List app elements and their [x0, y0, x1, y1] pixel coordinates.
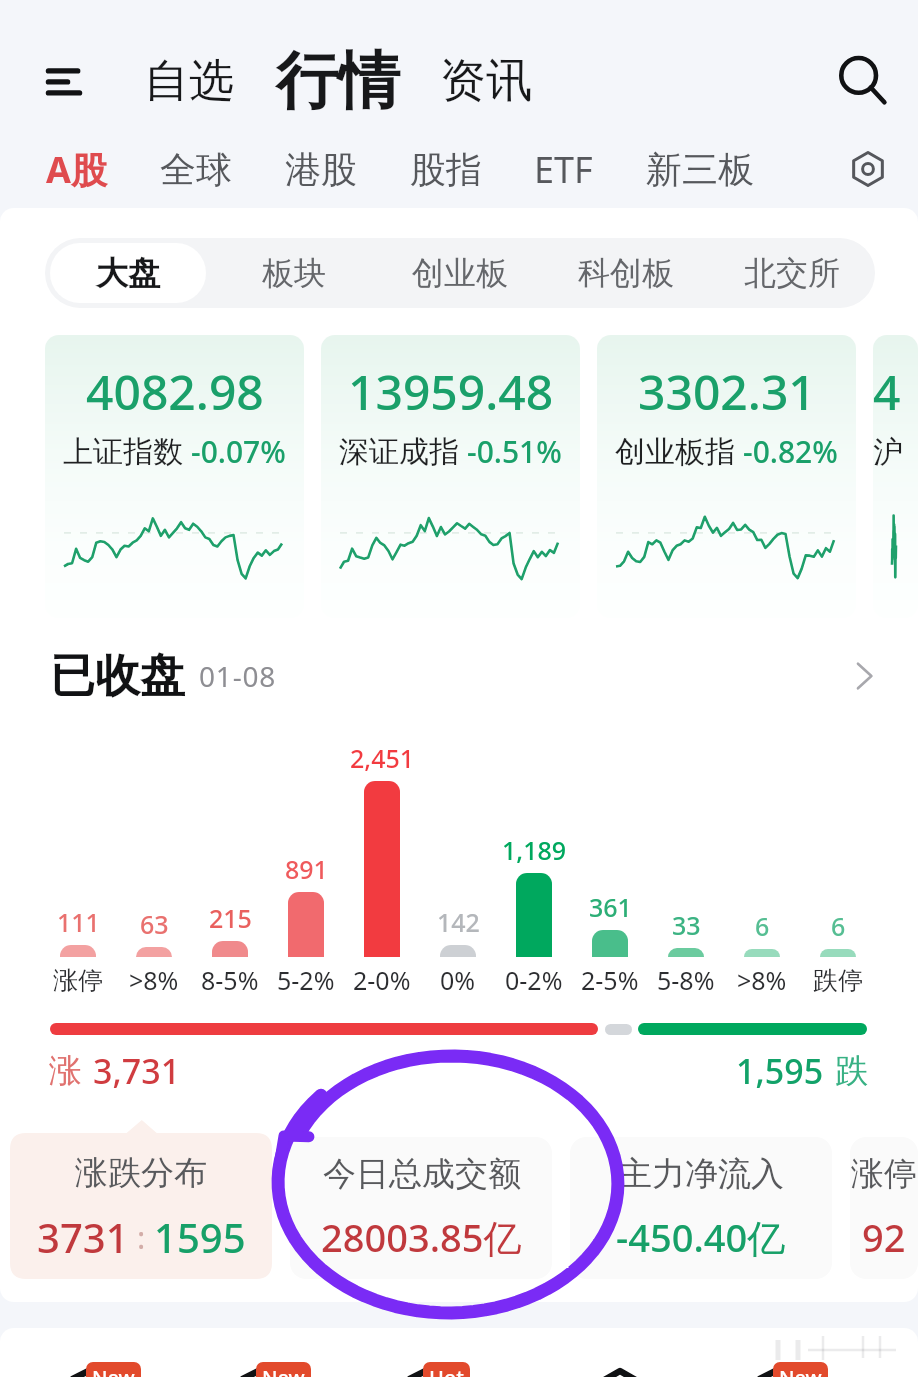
staticText: New	[262, 1364, 305, 1377]
button[interactable]: 大盘	[50, 243, 206, 303]
staticText: 5-2%	[277, 963, 335, 997]
button[interactable]: 今日总成交额	[290, 1137, 552, 1279]
staticText: 63	[140, 907, 169, 941]
staticText: 2-0%	[353, 963, 411, 997]
staticText: 大盘	[96, 253, 160, 293]
staticText: 3731	[37, 1210, 129, 1264]
staticText: 沪深300	[873, 433, 918, 471]
staticText: 北交所	[744, 253, 840, 293]
button[interactable]: 主力净流入	[570, 1137, 832, 1279]
button[interactable]: Menu	[38, 55, 90, 107]
staticText: 跌停	[813, 965, 863, 996]
button[interactable]: 板块	[216, 243, 372, 303]
staticText: 板块	[262, 253, 326, 293]
staticText: -450.40亿	[616, 1211, 786, 1263]
staticText: :	[129, 1216, 154, 1258]
button[interactable]: 创业板	[382, 243, 538, 303]
staticText: 创业板	[412, 253, 508, 293]
button[interactable]: Customize tabs	[846, 147, 890, 191]
button[interactable]: 142	[420, 905, 496, 957]
staticText: >8%	[129, 963, 179, 997]
staticText: 深证成指	[339, 433, 459, 471]
staticText: 142	[437, 905, 480, 939]
staticText: 215	[209, 901, 252, 935]
staticText: 3302.31	[638, 359, 816, 424]
staticText: -0.07%	[191, 431, 286, 472]
staticText: New	[779, 1364, 822, 1377]
button[interactable]: 4187.62	[873, 335, 918, 618]
staticText: 1595	[154, 1210, 246, 1264]
staticText: 4082.98	[86, 359, 264, 424]
staticText: 33	[672, 908, 701, 942]
staticText: 5-8%	[657, 963, 715, 997]
staticText: 涨停	[851, 1153, 917, 1195]
staticText: 已收盘	[50, 648, 185, 705]
button[interactable]: 1,189	[496, 833, 572, 957]
button[interactable]: 13959.48	[321, 335, 580, 618]
button[interactable]: 111	[40, 905, 116, 957]
staticText: 891	[285, 852, 328, 886]
button[interactable]: Quick action	[208, 1328, 332, 1377]
button[interactable]: 3302.31	[597, 335, 856, 618]
staticText: -0.51%	[467, 431, 562, 472]
button[interactable]: 北交所	[714, 243, 870, 303]
staticText: 主力净流入	[619, 1153, 784, 1195]
button[interactable]: 全球	[160, 147, 232, 192]
staticText: >8%	[737, 963, 787, 997]
staticText: 4187.62	[873, 359, 918, 424]
staticText: -0.82%	[743, 431, 838, 472]
button[interactable]: 新三板	[646, 147, 754, 192]
staticText: 1,595	[736, 1048, 824, 1094]
staticText: 上证指数	[63, 433, 183, 471]
button[interactable]: Search	[828, 47, 896, 115]
staticText: 0%	[440, 963, 476, 997]
staticText: 01-08	[199, 657, 277, 695]
button[interactable]: Quick action	[38, 1328, 162, 1377]
button[interactable]: 215	[192, 901, 268, 957]
button[interactable]: 361	[572, 890, 648, 957]
button[interactable]: 6	[800, 909, 876, 957]
button[interactable]: 33	[648, 908, 724, 957]
staticText: 涨跌分布	[75, 1152, 207, 1194]
staticText: 科创板	[578, 253, 674, 293]
staticText: 2-5%	[581, 963, 639, 997]
staticText: 28003.85亿	[321, 1211, 522, 1263]
staticText: 1,189	[502, 833, 567, 867]
button[interactable]: 涨停	[850, 1137, 918, 1279]
staticText: 创业板指	[615, 433, 735, 471]
button[interactable]: 已收盘	[50, 618, 877, 734]
button[interactable]: 自选	[144, 53, 234, 110]
button[interactable]: 6	[724, 909, 800, 957]
staticText: 8-5%	[201, 963, 259, 997]
button[interactable]: 63	[116, 907, 192, 957]
button[interactable]: 科创板	[548, 243, 704, 303]
staticText: 6	[755, 909, 770, 943]
staticText: 0-2%	[505, 963, 563, 997]
button[interactable]: 股指	[410, 147, 482, 192]
staticText: 111	[57, 905, 100, 939]
button[interactable]: 891	[268, 852, 344, 957]
staticText: Hot	[429, 1364, 464, 1377]
staticText: 92	[862, 1211, 906, 1263]
staticText: 361	[589, 890, 632, 924]
button[interactable]: Quick action	[725, 1328, 849, 1377]
button[interactable]: 港股	[285, 147, 357, 192]
staticText: 跌	[835, 1050, 868, 1092]
staticText: 2,451	[350, 741, 415, 775]
button[interactable]: A股	[46, 145, 107, 194]
staticText: 今日总成交额	[323, 1153, 521, 1195]
staticText: 6	[831, 909, 846, 943]
button[interactable]: Quick action	[375, 1328, 499, 1377]
staticText: 涨	[49, 1050, 82, 1092]
button[interactable]: Quick action	[558, 1328, 682, 1377]
staticText: 涨停	[53, 965, 103, 996]
button[interactable]: 4082.98	[45, 335, 304, 618]
button[interactable]: 资讯	[440, 52, 532, 110]
staticText: 3,731	[93, 1048, 181, 1094]
staticText: 13959.48	[348, 359, 554, 424]
button[interactable]: 2,451	[344, 741, 420, 957]
staticText: New	[92, 1364, 135, 1377]
button[interactable]: 行情	[276, 42, 400, 120]
button[interactable]: ETF	[534, 145, 593, 194]
